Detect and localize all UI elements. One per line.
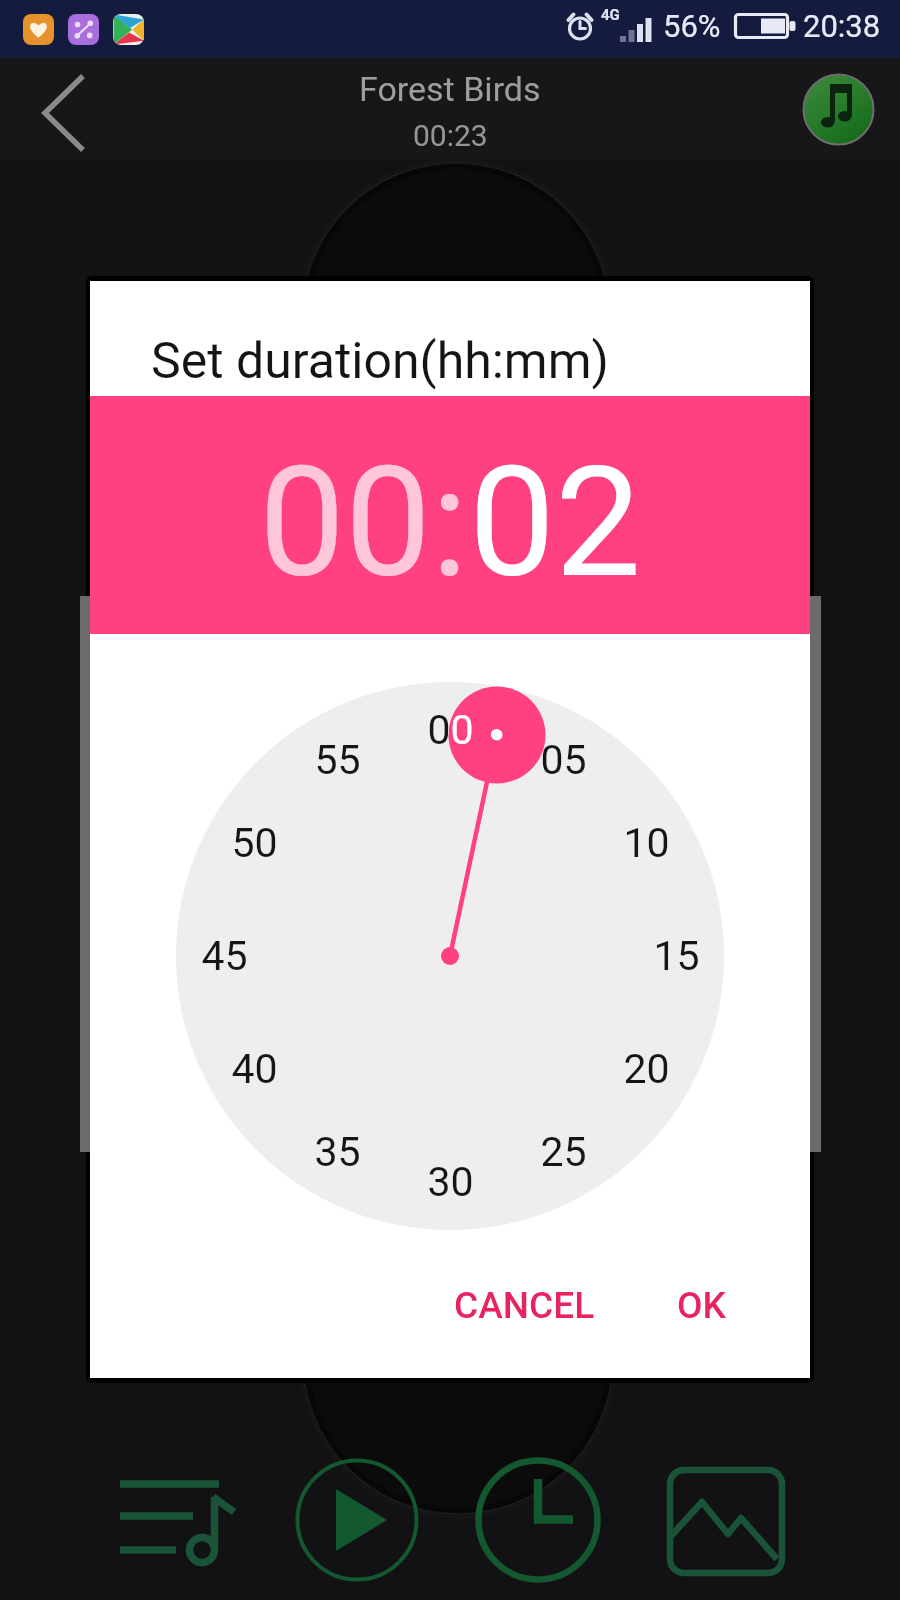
staticText: 00 bbox=[427, 706, 474, 754]
staticText: 40 bbox=[231, 1045, 278, 1093]
button[interactable]: Back bbox=[0, 58, 130, 160]
staticText: CANCEL bbox=[454, 1284, 595, 1327]
staticText: 10 bbox=[623, 819, 670, 867]
button[interactable]: Playlist bbox=[110, 1468, 246, 1572]
staticText: 25 bbox=[540, 1128, 587, 1176]
staticText: 15 bbox=[653, 932, 700, 980]
staticText: 00 bbox=[448, 706, 474, 754]
staticText: 30 bbox=[427, 1158, 474, 1206]
staticText: 20 bbox=[623, 1045, 670, 1093]
staticText: 20:38 bbox=[803, 8, 881, 44]
staticText: 35 bbox=[314, 1128, 361, 1176]
staticText: 56% bbox=[663, 8, 721, 44]
button[interactable]: 00: bbox=[259, 433, 469, 612]
staticText: 55 bbox=[314, 736, 361, 784]
staticText: Set duration(hh:mm) bbox=[151, 332, 609, 391]
button[interactable]: CANCEL bbox=[428, 1259, 620, 1351]
button[interactable]: Timer bbox=[475, 1457, 601, 1583]
button[interactable]: Play bbox=[295, 1458, 419, 1582]
staticText: 45 bbox=[201, 932, 248, 980]
staticText: OK bbox=[677, 1284, 726, 1327]
staticText: 00:23 bbox=[413, 118, 488, 153]
staticText: 50 bbox=[231, 819, 278, 867]
button[interactable]: 02 bbox=[469, 433, 641, 612]
button[interactable]: Minute dial bbox=[176, 682, 724, 1230]
button[interactable]: Image bbox=[665, 1466, 789, 1580]
button[interactable]: OK bbox=[656, 1259, 746, 1351]
staticText: 4G bbox=[601, 6, 620, 24]
button[interactable]: Music library bbox=[802, 73, 875, 146]
staticText: Forest Birds bbox=[359, 69, 541, 109]
staticText: 05 bbox=[540, 736, 587, 784]
